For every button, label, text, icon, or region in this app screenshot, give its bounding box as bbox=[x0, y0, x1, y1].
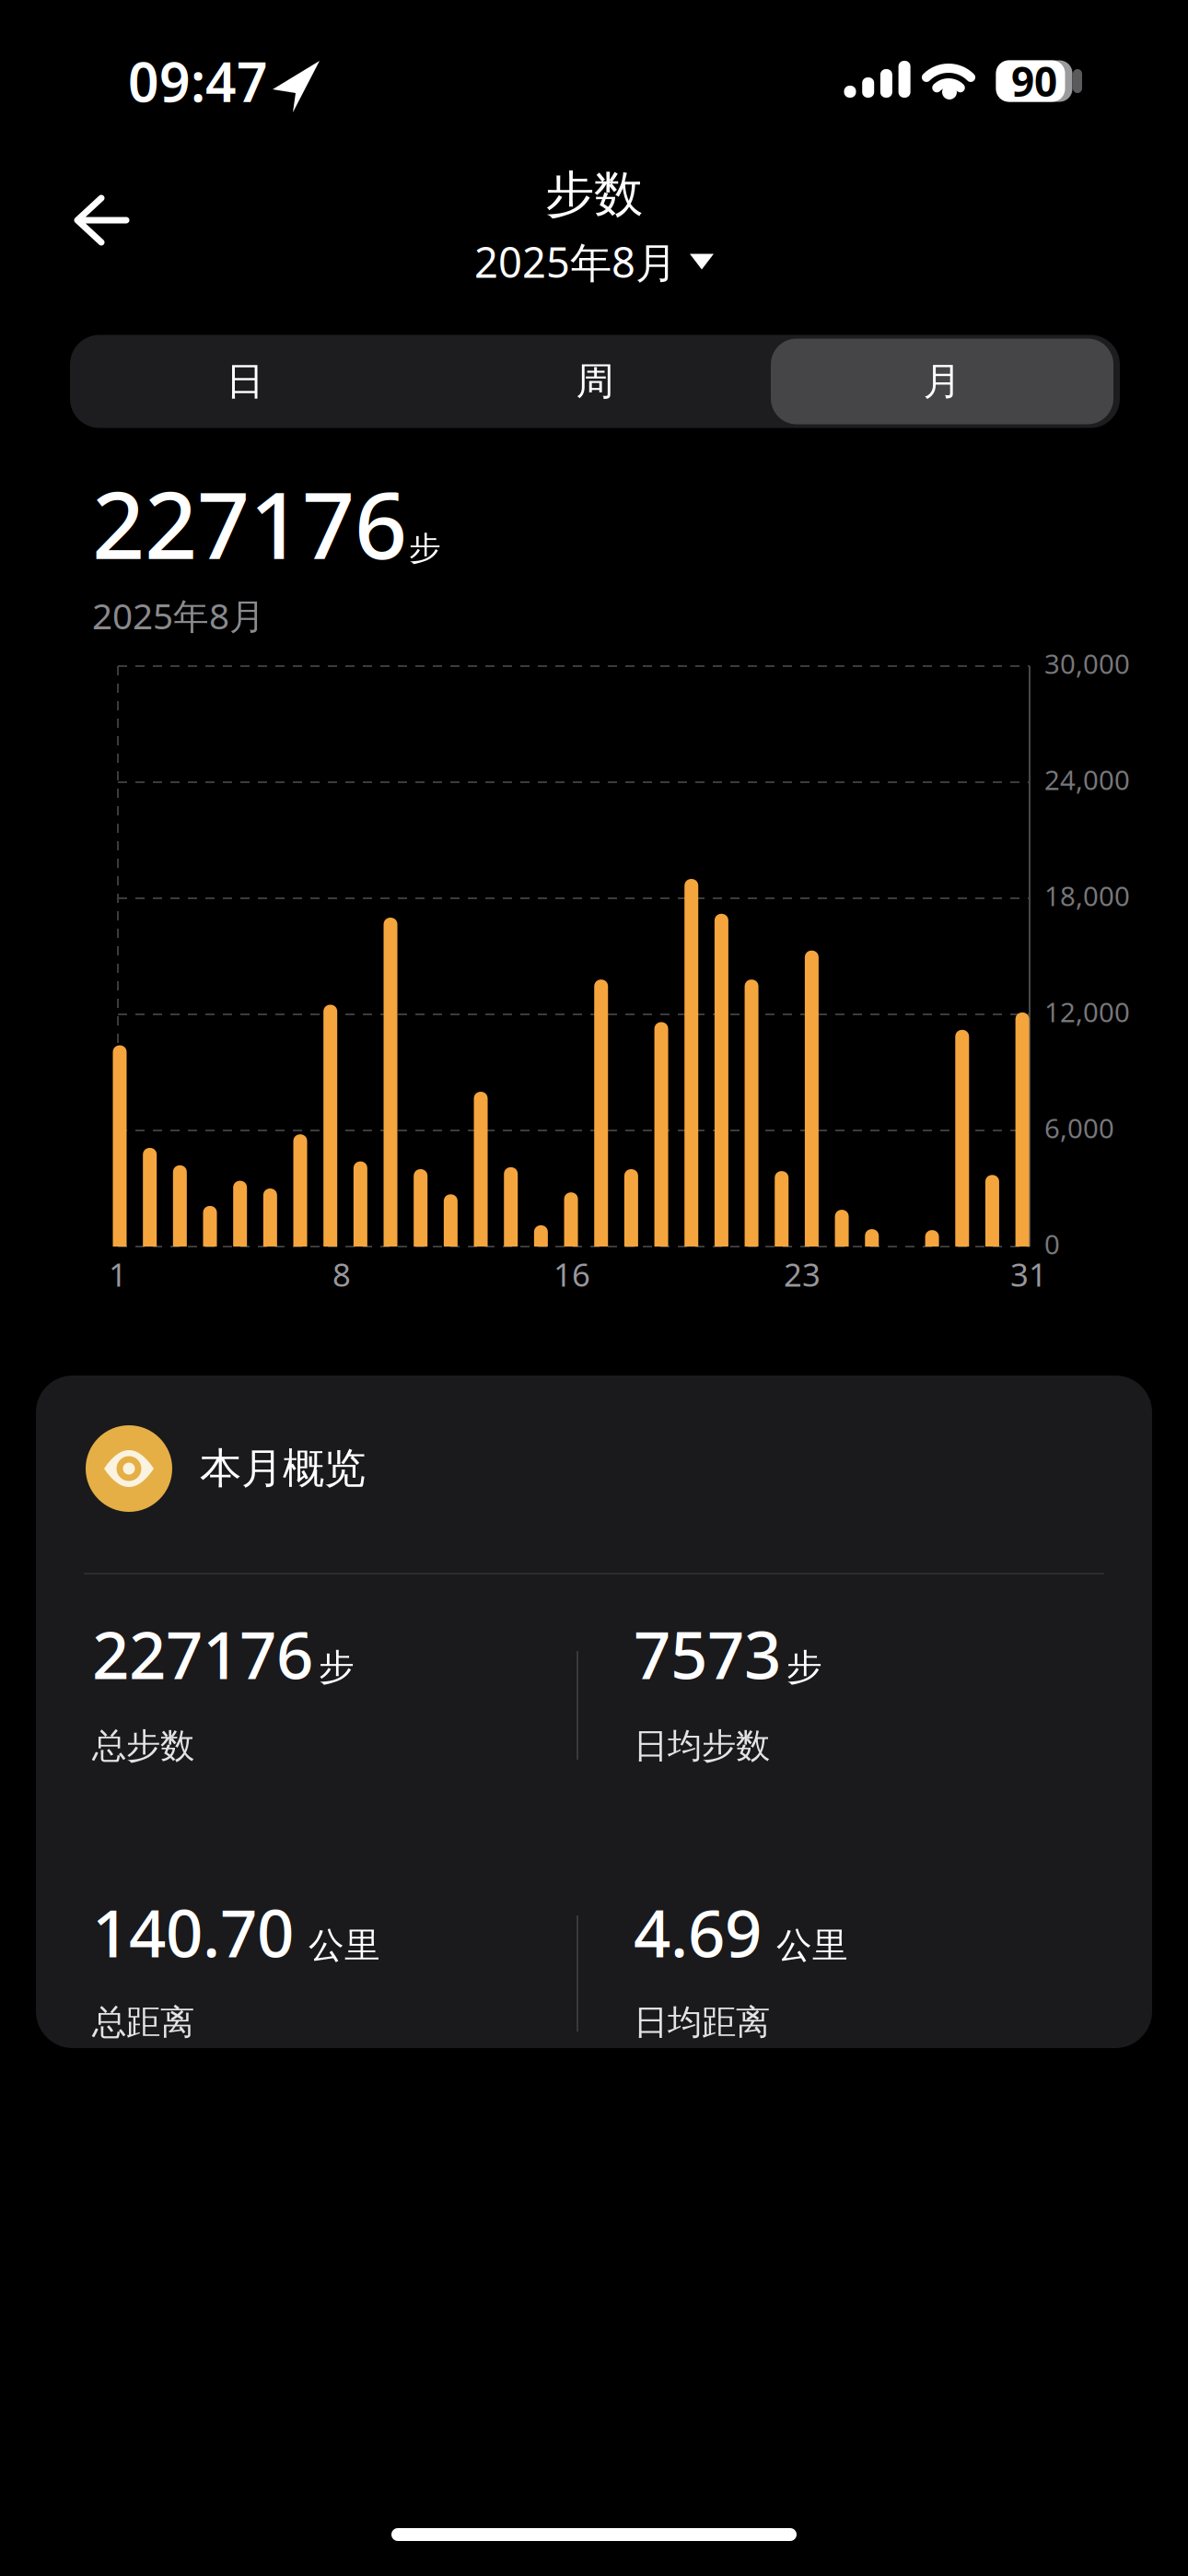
staticText: 23 bbox=[784, 1253, 821, 1295]
staticText: 总距离 bbox=[92, 2001, 194, 2043]
button[interactable]: 周 bbox=[424, 340, 766, 423]
staticText: 步 bbox=[409, 529, 441, 568]
staticText: 227176 bbox=[92, 1611, 313, 1697]
staticText: 公里 bbox=[776, 1924, 848, 1967]
staticText: 日 bbox=[226, 358, 264, 405]
staticText: 30,000 bbox=[1044, 645, 1130, 681]
staticText: 周 bbox=[576, 358, 614, 405]
staticText: 7573 bbox=[634, 1611, 781, 1697]
staticText: 步数 bbox=[545, 164, 643, 225]
staticText: 1 bbox=[109, 1253, 127, 1295]
staticText: 总步数 bbox=[92, 1725, 194, 1767]
staticText: 2025年8月 bbox=[92, 592, 265, 639]
staticText: 16 bbox=[553, 1253, 590, 1295]
staticText: 09:47 bbox=[128, 45, 268, 117]
staticText: 2025年8月 bbox=[474, 234, 677, 289]
staticText: 步 bbox=[319, 1645, 355, 1689]
staticText: 本月概览 bbox=[200, 1443, 366, 1494]
button[interactable]: 返回 bbox=[56, 174, 148, 266]
staticText: 0 bbox=[1044, 1226, 1060, 1262]
staticText: 18,000 bbox=[1044, 878, 1130, 913]
staticText: 31 bbox=[1010, 1253, 1047, 1295]
staticText: 227176 bbox=[92, 462, 407, 584]
staticText: 日均距离 bbox=[634, 2001, 770, 2043]
staticText: 日均步数 bbox=[634, 1725, 770, 1767]
staticText: 6,000 bbox=[1044, 1110, 1114, 1146]
staticText: 月 bbox=[923, 358, 961, 405]
button[interactable]: 日 bbox=[74, 340, 416, 423]
staticText: 12,000 bbox=[1044, 994, 1130, 1030]
staticText: 公里 bbox=[309, 1924, 380, 1967]
staticText: 90 bbox=[1011, 54, 1057, 108]
staticText: 24,000 bbox=[1044, 761, 1130, 797]
staticText: 8 bbox=[332, 1253, 351, 1295]
staticText: 4.69 bbox=[634, 1889, 762, 1975]
button[interactable]: 2025年8月 bbox=[474, 234, 714, 289]
staticText: 140.70 bbox=[92, 1889, 294, 1975]
button[interactable]: 月 bbox=[771, 340, 1113, 423]
staticText: 步 bbox=[786, 1645, 822, 1689]
